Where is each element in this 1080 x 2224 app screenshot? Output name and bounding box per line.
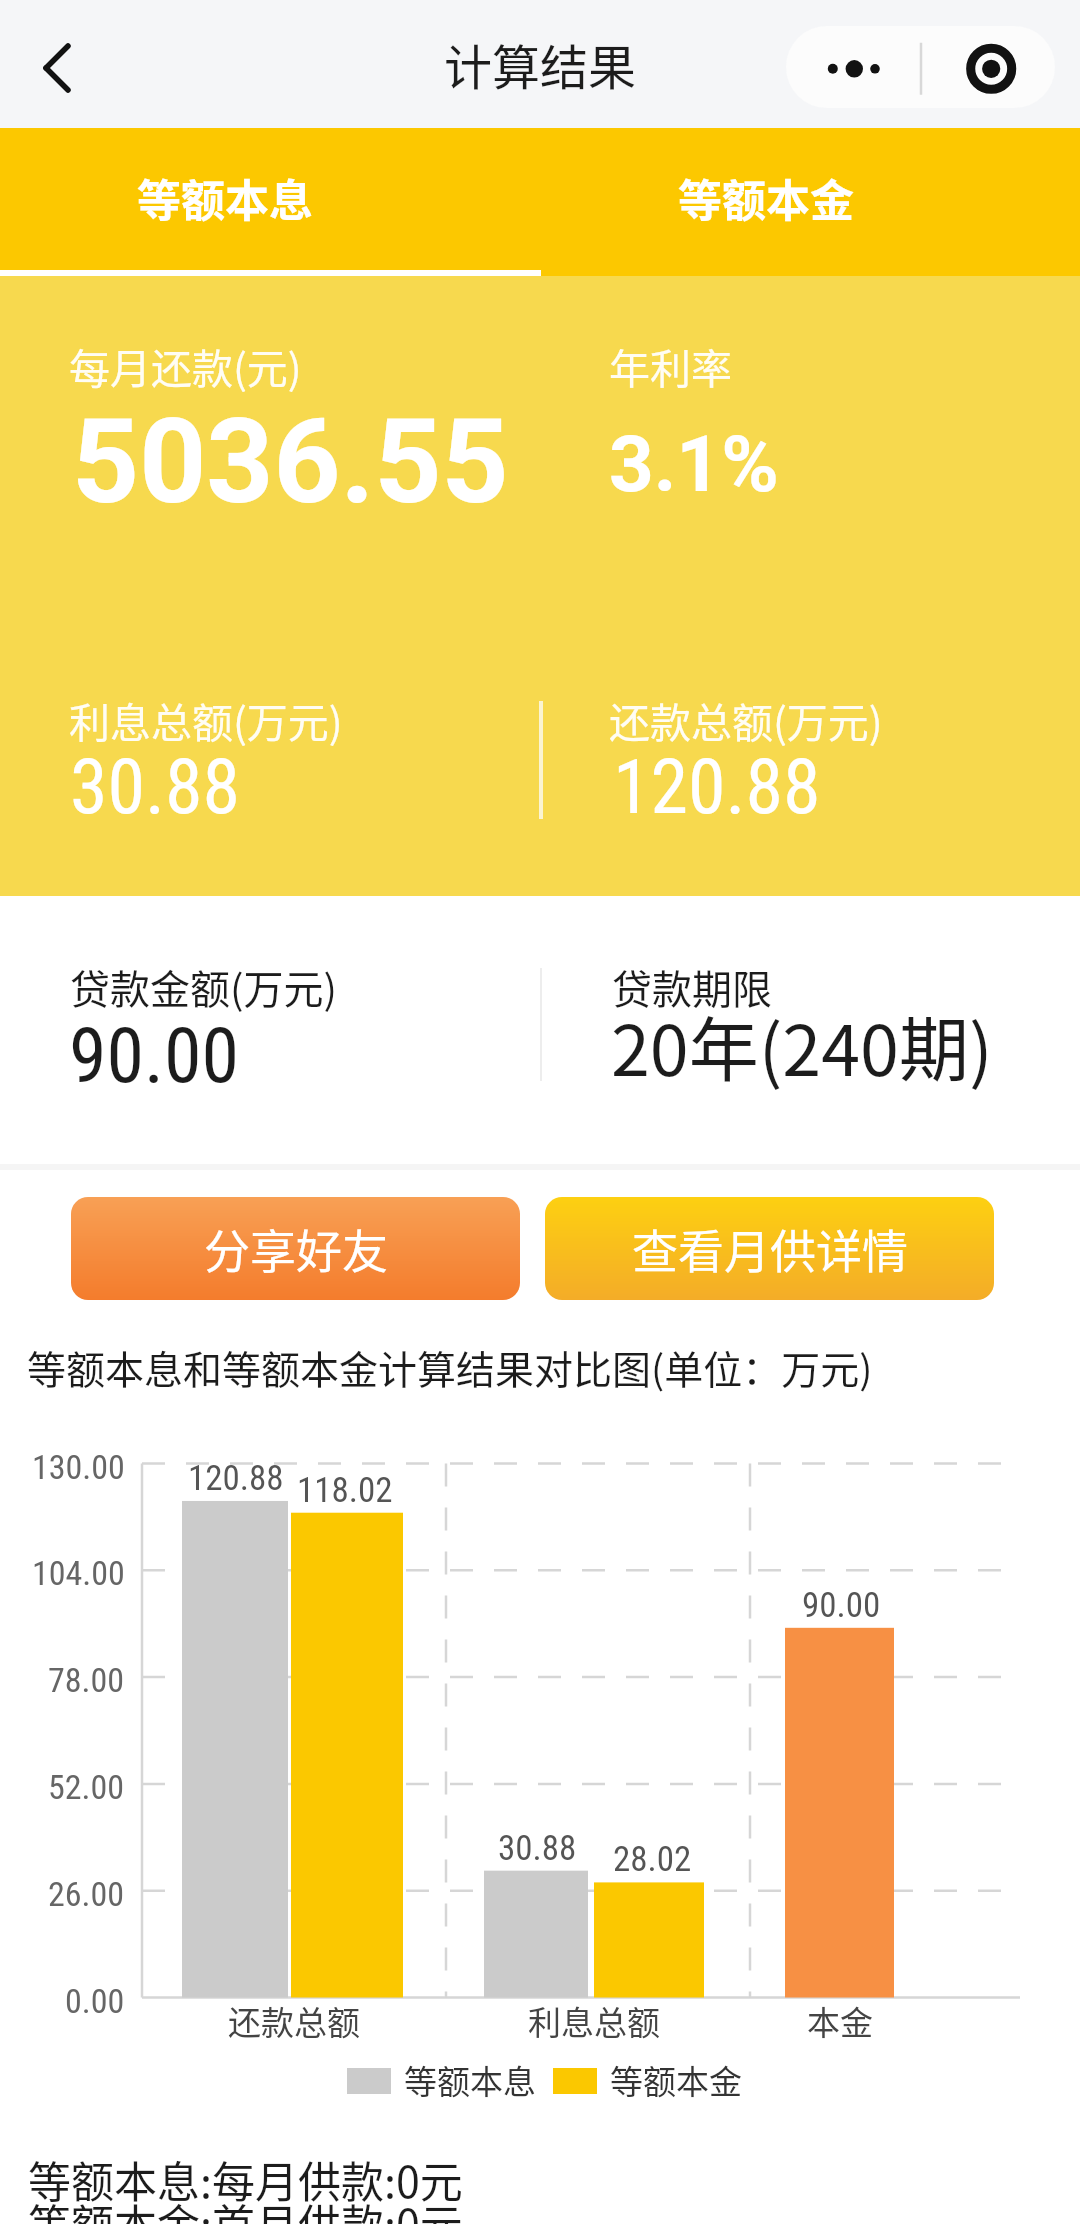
staticText: 还款总额(万元) [609,690,883,749]
staticText: 20年(240期) [611,995,993,1096]
staticText: 26.00 [48,1874,125,1914]
button[interactable]: 查看月供详情 [545,1197,994,1300]
staticText: 30.88 [498,1828,577,1869]
button[interactable]: 等额本息 [0,128,540,276]
staticText: 120.88 [188,1458,284,1499]
button[interactable]: Menu [786,26,1055,108]
staticText: 30.88 [70,742,241,831]
button[interactable]: Back [8,24,88,104]
staticText: 3.1% [609,419,779,510]
staticText: 118.02 [297,1470,393,1511]
staticText: 年利率 [609,336,732,395]
staticText: 104.00 [32,1553,125,1593]
button[interactable]: 分享好友 [71,1197,520,1300]
staticText: 每月还款(元) [69,336,302,395]
staticText: 5036.55 [72,393,509,530]
staticText: 28.02 [613,1839,692,1880]
staticText: 120.88 [613,742,821,831]
staticText: 90.00 [69,1011,240,1100]
staticText: 分享好友 [204,1215,388,1282]
staticText: 等额本息:每月供款:0元 [28,2148,463,2210]
staticText: 130.00 [32,1447,125,1487]
staticText: 等额本息 [137,166,313,230]
staticText: 等额本金:首月供款:0元 [28,2191,463,2224]
staticText: 本金 [807,1997,873,2045]
staticText: 90.00 [802,1585,881,1626]
staticText: 等额本金 [610,2056,742,2104]
staticText: 贷款期限 [612,958,772,1016]
staticText: 等额本息 [404,2056,536,2104]
button[interactable]: 等额本金 [540,128,1080,276]
staticText: 0.00 [65,1981,125,2021]
staticText: 还款总额 [228,1997,360,2045]
staticText: 78.00 [48,1660,125,1700]
staticText: 等额本息和等额本金计算结果对比图(单位：万元) [27,1339,873,1395]
staticText: 52.00 [48,1767,125,1807]
staticText: 等额本金 [678,166,854,230]
staticText: 利息总额 [528,1997,660,2045]
staticText: 查看月供详情 [632,1215,908,1282]
staticText: 利息总额(万元) [69,690,343,749]
staticText: 贷款金额(万元) [70,958,338,1016]
staticText: 计算结果 [444,29,637,99]
